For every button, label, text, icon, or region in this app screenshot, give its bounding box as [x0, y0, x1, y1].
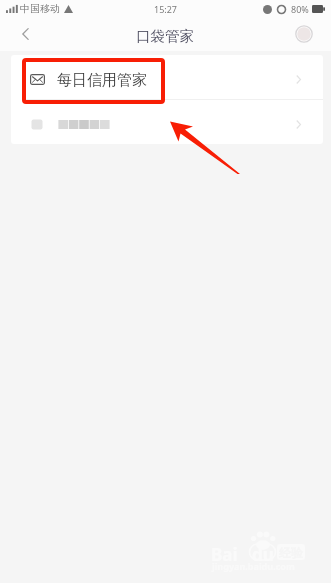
staticText: 口袋管家 — [136, 27, 194, 45]
staticText: 中国移动 — [20, 2, 60, 15]
staticText: 80% — [291, 3, 309, 15]
button[interactable]: Account — [279, 17, 331, 51]
staticText: 15:27 — [154, 3, 178, 15]
button[interactable]: Back — [0, 17, 50, 51]
button[interactable]: 每日信用管家 — [11, 55, 323, 99]
staticText: 每日信用管家 — [57, 71, 147, 90]
button[interactable] — [11, 100, 323, 144]
